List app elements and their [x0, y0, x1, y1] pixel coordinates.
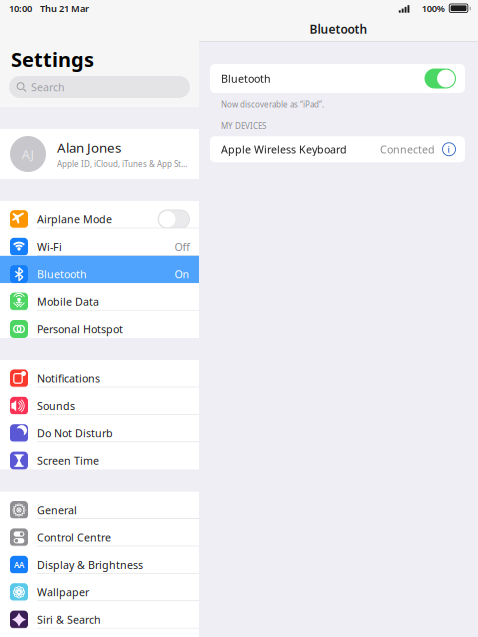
staticText: Screen Time — [37, 453, 99, 468]
staticText: Settings — [11, 46, 94, 73]
staticText: Airplane Mode — [37, 212, 112, 226]
staticText: MY DEVICES — [221, 121, 266, 131]
staticText: Off — [174, 240, 189, 254]
button[interactable]: Control Centre — [0, 519, 199, 546]
staticText: Apple ID, iCloud, iTunes & App St… — [57, 158, 187, 169]
staticText: Connected — [380, 142, 435, 156]
staticText: Display & Brightness — [37, 558, 143, 572]
staticText: Now discoverable as “iPad”. — [221, 99, 324, 110]
staticText: Sounds — [37, 399, 75, 413]
button[interactable]: Do Not Disturb — [0, 415, 199, 442]
staticText: Personal Hotspot — [37, 322, 123, 336]
button[interactable]: Bluetooth — [210, 64, 465, 93]
staticText: AJ — [21, 145, 34, 163]
staticText: General — [37, 503, 77, 517]
staticText: Do Not Disturb — [37, 426, 113, 440]
staticText: Alan Jones — [57, 139, 121, 156]
button[interactable]: AJ — [0, 129, 199, 179]
button[interactable]: Bluetooth — [0, 256, 199, 283]
staticText: Wi-Fi — [37, 240, 62, 254]
button[interactable]: Sounds — [0, 387, 199, 415]
staticText: Siri & Search — [37, 612, 101, 627]
button[interactable]: Screen Time — [0, 442, 199, 470]
staticText: Apple Wireless Keyboard — [221, 142, 347, 156]
staticText: 10:00 — [9, 2, 32, 15]
button[interactable]: Siri & Search — [0, 601, 199, 629]
staticText: 100% — [422, 2, 445, 15]
button[interactable]: AA — [0, 546, 199, 574]
button[interactable]: Wi-Fi — [0, 228, 199, 256]
staticText: Bluetooth — [37, 267, 87, 281]
staticText: AA — [14, 559, 24, 570]
staticText: i — [447, 143, 450, 155]
staticText: On — [174, 267, 189, 281]
button[interactable]: Notifications — [0, 360, 199, 387]
staticText: Bluetooth — [309, 21, 367, 37]
staticText: Notifications — [37, 371, 100, 385]
button[interactable]: General — [0, 492, 199, 519]
staticText: Wallpaper — [37, 585, 89, 599]
staticText: Search — [31, 80, 65, 94]
button[interactable]: Wallpaper — [0, 574, 199, 601]
button[interactable]: Apple Wireless Keyboard — [210, 136, 465, 162]
staticText: Control Centre — [37, 530, 111, 544]
button[interactable]: Personal Hotspot — [0, 311, 199, 338]
button[interactable]: Mobile Data — [0, 283, 199, 311]
staticText: Mobile Data — [37, 294, 99, 309]
button[interactable]: Airplane Mode — [0, 201, 199, 228]
staticText: Thu 21 Mar — [40, 2, 89, 15]
staticText: Bluetooth — [221, 71, 271, 86]
